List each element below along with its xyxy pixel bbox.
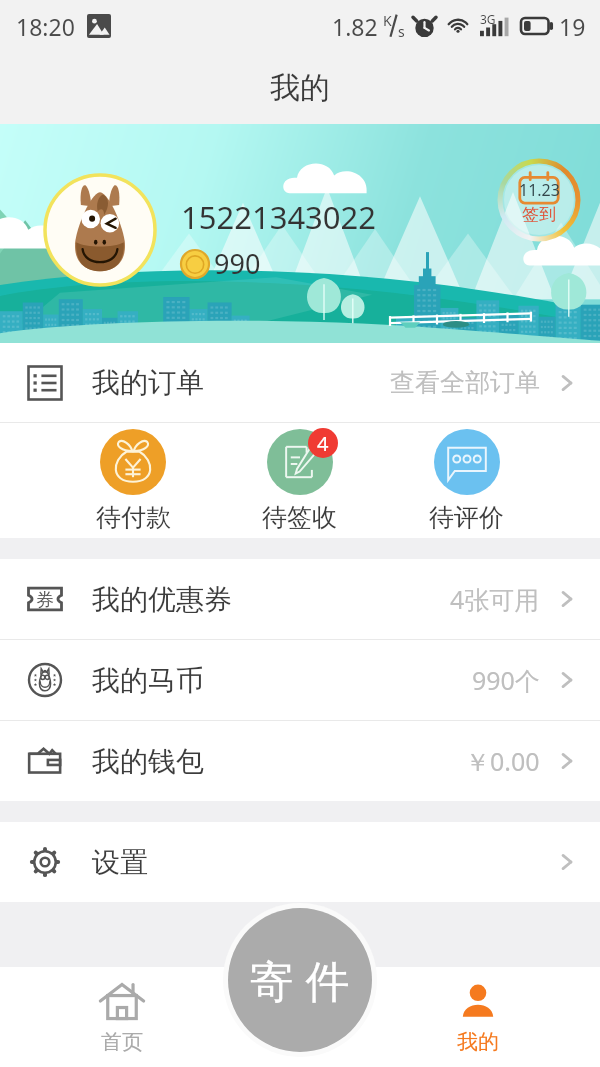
button[interactable]: 首页 [52, 967, 192, 1067]
staticText: 设置 [92, 845, 148, 880]
staticText: 签到 [522, 204, 556, 225]
staticText: K [383, 11, 392, 30]
staticText: 券 [36, 589, 54, 612]
staticText: 待签收 [262, 502, 337, 533]
staticText: 3G [480, 11, 496, 27]
staticText: 1.82 [332, 11, 378, 42]
staticText: 待付款 [96, 502, 171, 533]
staticText: 待评价 [429, 502, 504, 533]
staticText: 我的钱包 [92, 744, 204, 779]
staticText: 查看全部订单 [390, 367, 540, 398]
button[interactable]: 4 [216, 423, 383, 538]
staticText: 我的优惠券 [92, 582, 232, 617]
staticText: 我的马币 [92, 663, 204, 698]
button[interactable]: 我的 [408, 967, 548, 1067]
button[interactable]: 设置 [0, 822, 600, 902]
button[interactable]: 我的钱包 [0, 721, 600, 801]
staticText: 11.23 [519, 179, 560, 201]
staticText: 19 [559, 11, 586, 42]
staticText: s [398, 22, 405, 41]
button[interactable]: 券 [0, 559, 600, 639]
staticText: 18:20 [16, 11, 75, 42]
button[interactable]: 寄 件 [228, 908, 372, 1052]
staticText: 首页 [101, 1029, 143, 1055]
staticText: 4 [317, 430, 329, 457]
staticText: 990个 [472, 663, 540, 697]
staticText: 我的 [457, 1029, 499, 1055]
button[interactable]: 待评价 [383, 423, 550, 538]
staticText: 寄 件 [250, 950, 350, 1010]
staticText: 4张可用 [450, 582, 540, 616]
button[interactable]: 我的马币 [0, 640, 600, 720]
staticText: 我的 [270, 69, 330, 107]
button[interactable]: 我的订单 [0, 343, 600, 422]
staticText: 990 [214, 245, 261, 282]
staticText: 我的订单 [92, 365, 204, 400]
button[interactable]: 待付款 [50, 423, 216, 538]
staticText: ￥0.00 [465, 744, 540, 778]
staticText: 15221343022 [181, 196, 377, 238]
button[interactable]: 签到 Check in [496, 157, 582, 243]
